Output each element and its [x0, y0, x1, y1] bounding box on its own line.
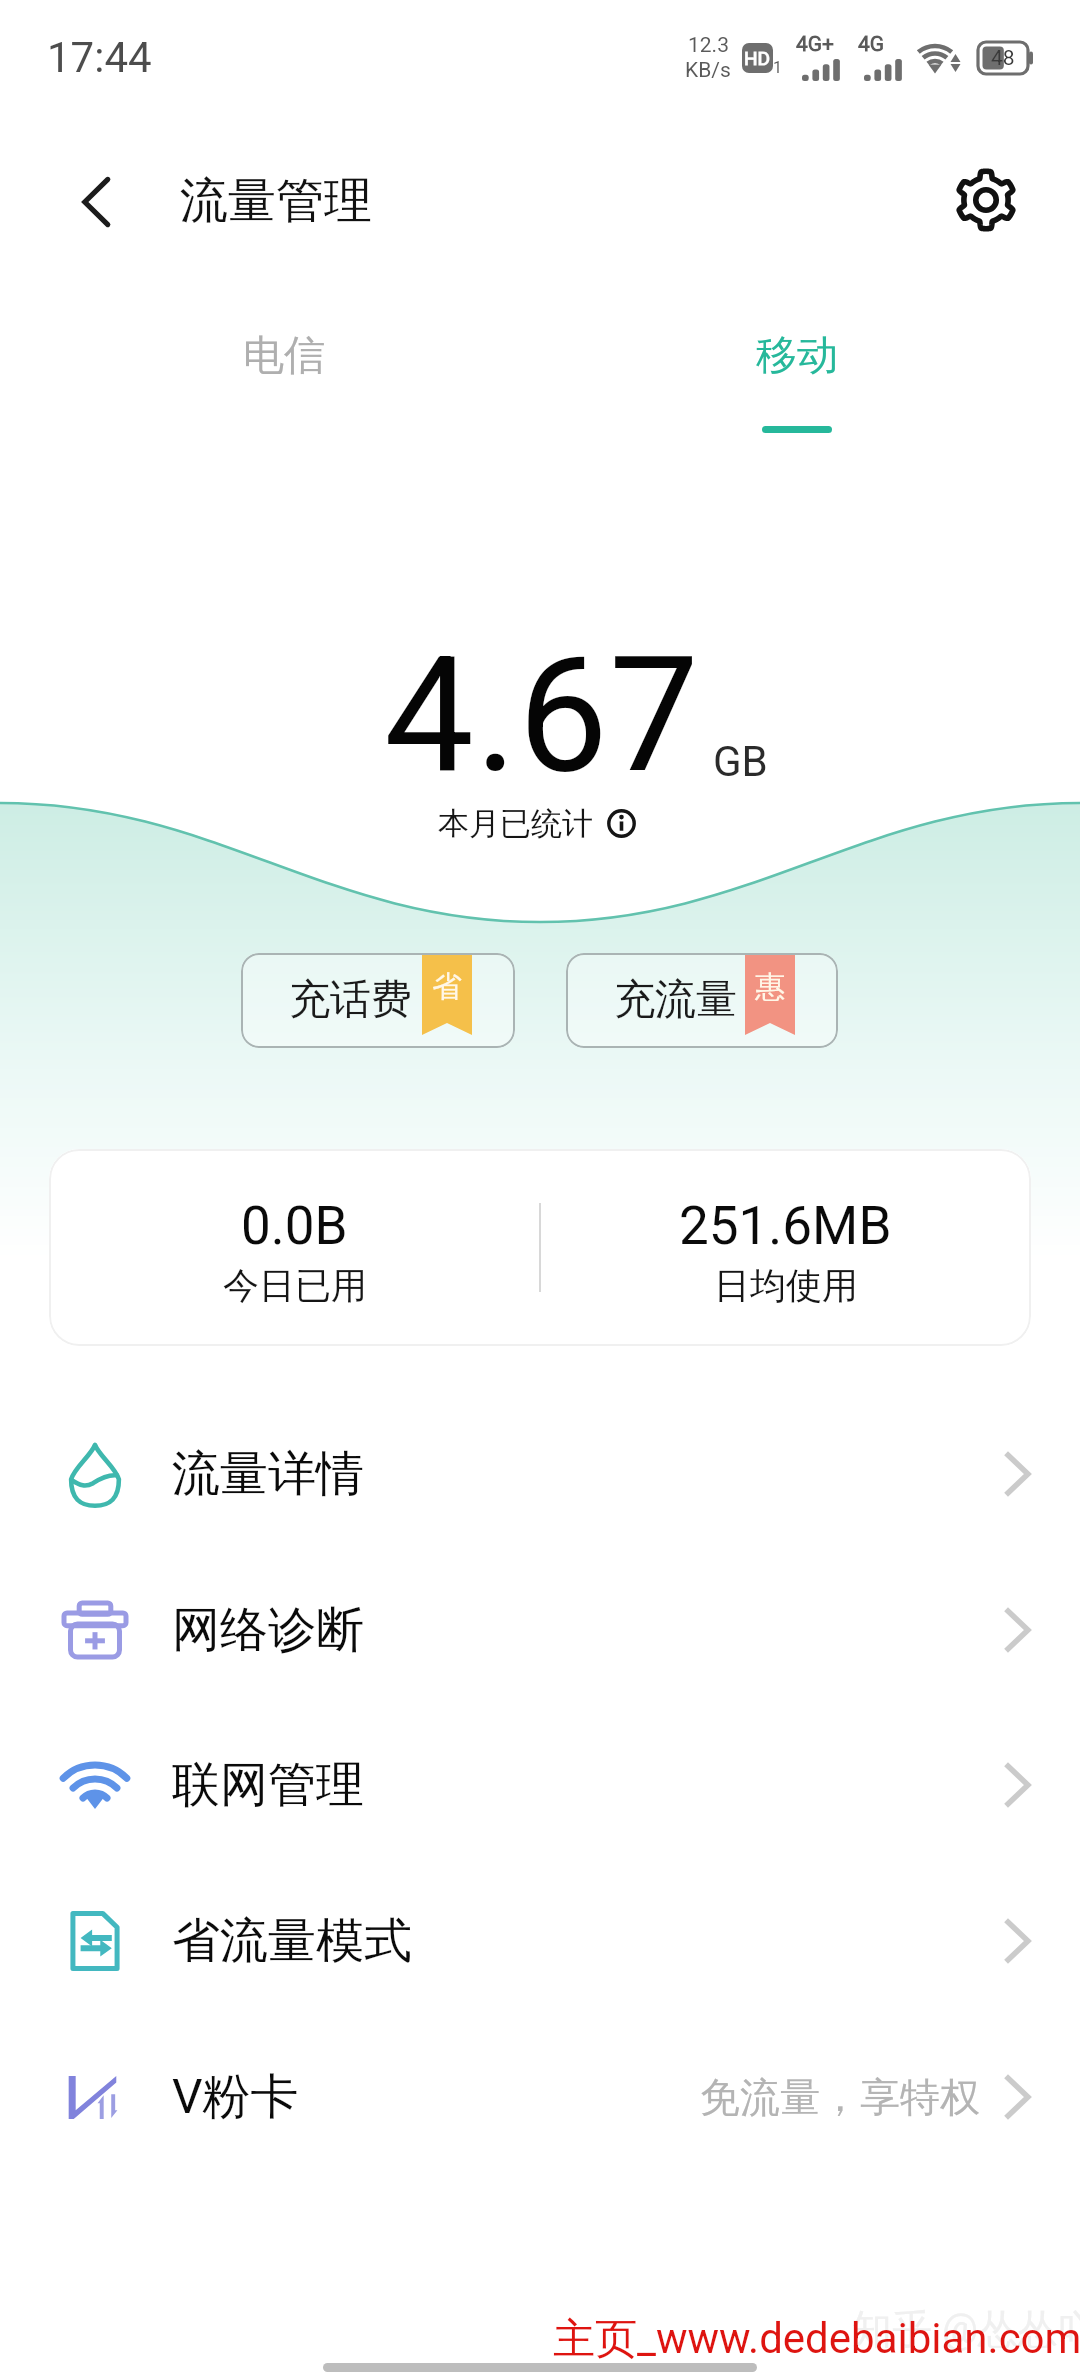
- button[interactable]: V粉卡: [0, 2019, 1080, 2175]
- staticText: 省: [432, 968, 462, 1006]
- staticText: 251.6MB: [679, 1195, 892, 1257]
- staticText: 1: [773, 58, 782, 77]
- button[interactable]: Settings: [946, 160, 1026, 240]
- staticText: 免流量，享特权: [700, 2072, 980, 2122]
- staticText: 流量管理: [180, 171, 372, 231]
- staticText: 日均使用: [714, 1263, 858, 1308]
- staticText: 移动: [756, 330, 838, 382]
- staticText: 0.0B: [241, 1195, 348, 1257]
- staticText: 本月已统计: [438, 804, 593, 843]
- staticText: 4G: [858, 32, 885, 57]
- button[interactable]: Back: [66, 172, 126, 232]
- staticText: V粉卡: [172, 2067, 299, 2127]
- staticText: 惠: [755, 968, 785, 1006]
- staticText: 联网管理: [172, 1755, 364, 1815]
- staticText: 48: [991, 46, 1015, 71]
- staticText: HD: [744, 47, 771, 69]
- staticText: GB: [713, 737, 768, 786]
- staticText: 省流量模式: [172, 1911, 412, 1971]
- button[interactable]: 流量详情: [0, 1396, 1080, 1552]
- staticText: 12.3: [688, 33, 729, 58]
- button[interactable]: 联网管理: [0, 1707, 1080, 1863]
- staticText: 充话费: [289, 974, 412, 1026]
- staticText: 4.67: [384, 622, 700, 810]
- staticText: 17:44: [47, 33, 152, 82]
- button[interactable]: 移动: [540, 330, 1053, 480]
- staticText: 充流量: [614, 974, 737, 1026]
- staticText: 4G+: [796, 32, 835, 57]
- staticText: KB/s: [685, 58, 731, 83]
- button[interactable]: 电信: [27, 330, 540, 450]
- button[interactable]: 充话费: [241, 953, 515, 1048]
- staticText: 主页_www.dedebaibian.com: [553, 2313, 1080, 2366]
- staticText: 今日已用: [223, 1263, 367, 1308]
- button[interactable]: 省流量模式: [0, 1863, 1080, 2019]
- staticText: 流量详情: [172, 1444, 364, 1504]
- staticText: 电信: [243, 330, 325, 382]
- staticText: 知乎 @怂怂吖: [852, 2304, 1080, 2354]
- staticText: 网络诊断: [172, 1600, 364, 1660]
- button[interactable]: 充流量: [566, 953, 838, 1048]
- button[interactable]: 网络诊断: [0, 1552, 1080, 1708]
